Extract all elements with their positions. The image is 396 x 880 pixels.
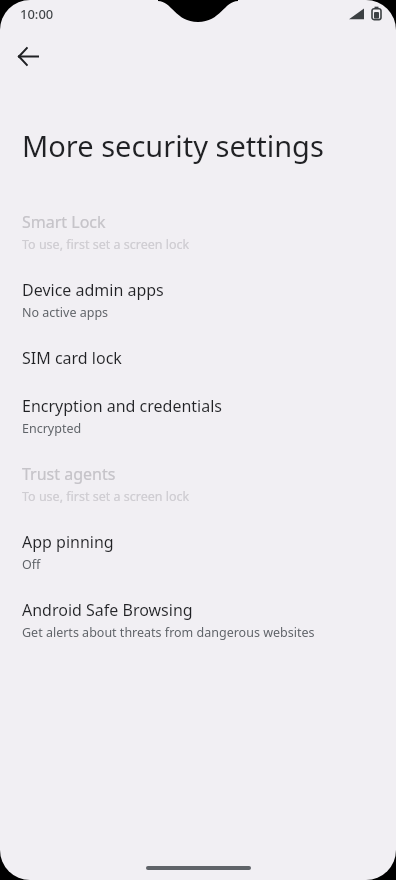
staticText: Get alerts about threats from dangerous … (22, 624, 315, 641)
staticText: More security settings (22, 126, 324, 165)
button[interactable]: Android Safe Browsing (0, 586, 396, 654)
staticText: Smart Lock (22, 211, 106, 233)
staticText: To use, first set a screen lock (22, 236, 190, 253)
button[interactable]: Smart Lock (0, 198, 396, 266)
staticText: No active apps (22, 304, 109, 321)
button[interactable]: Trust agents (0, 450, 396, 518)
staticText: Off (22, 556, 41, 573)
staticText: Encryption and credentials (22, 395, 222, 417)
button[interactable]: SIM card lock (0, 334, 396, 382)
staticText: App pinning (22, 531, 114, 553)
staticText: Device admin apps (22, 279, 164, 301)
button[interactable]: Device admin apps (0, 266, 396, 334)
staticText: To use, first set a screen lock (22, 488, 190, 505)
staticText: Trust agents (22, 463, 116, 485)
staticText: 10:00 (20, 5, 54, 23)
staticText: SIM card lock (22, 347, 122, 369)
staticText: Android Safe Browsing (22, 599, 193, 621)
button[interactable]: Encryption and credentials (0, 382, 396, 450)
staticText: Encrypted (22, 420, 82, 437)
button[interactable]: Back (6, 34, 50, 78)
button[interactable]: App pinning (0, 518, 396, 586)
